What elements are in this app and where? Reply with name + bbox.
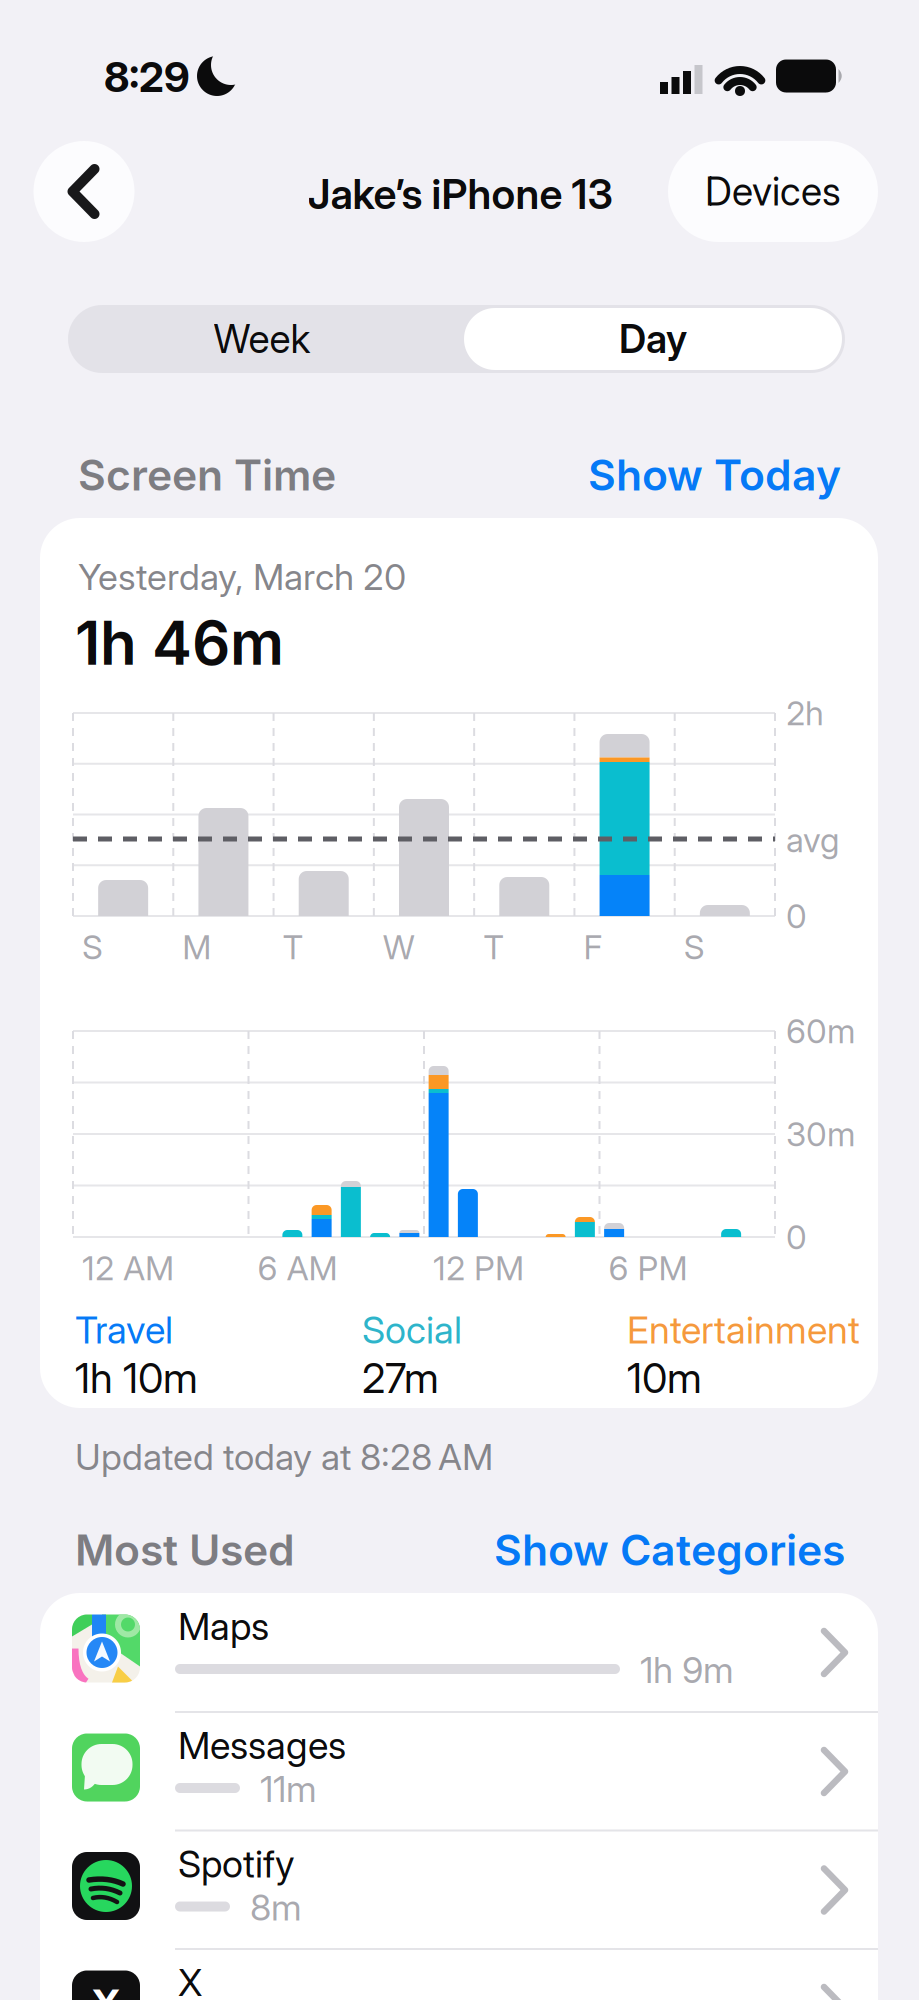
- button[interactable]: Show Categories: [475, 1522, 845, 1578]
- button[interactable]: Week: [72, 305, 452, 373]
- staticText: X: [178, 1960, 202, 2000]
- staticText: M: [182, 927, 211, 967]
- staticText: Messages: [178, 1723, 346, 1767]
- staticText: Most Used: [75, 1525, 295, 1575]
- staticText: Travel: [75, 1308, 173, 1352]
- button[interactable]: Back: [33, 141, 134, 242]
- staticText: 27m: [362, 1354, 439, 1402]
- staticText: Maps: [178, 1604, 269, 1648]
- staticText: S: [684, 927, 705, 967]
- button[interactable]: Show Today: [571, 447, 841, 503]
- staticText: S: [82, 927, 103, 967]
- staticText: Show Categories: [494, 1525, 845, 1575]
- staticText: Screen Time: [78, 450, 336, 500]
- staticText: 1h 9m: [640, 1649, 734, 1691]
- button[interactable]: Spotify: [40, 1830, 878, 1949]
- staticText: Jake’s iPhone 13: [307, 170, 612, 218]
- button[interactable]: Messages: [40, 1712, 878, 1831]
- staticText: avg: [786, 820, 839, 860]
- staticText: W: [383, 927, 415, 967]
- staticText: Show Today: [588, 450, 841, 500]
- button[interactable]: X: [40, 1949, 878, 2000]
- staticText: Week: [213, 316, 310, 362]
- staticText: 2h: [786, 693, 824, 733]
- staticText: 0: [786, 1217, 807, 1257]
- staticText: 11m: [260, 1768, 317, 1810]
- staticText: Day: [619, 316, 687, 362]
- staticText: X: [91, 1980, 120, 2000]
- staticText: 8:29: [104, 53, 190, 101]
- staticText: F: [583, 927, 602, 967]
- staticText: 1h 46m: [75, 608, 284, 678]
- staticText: 10m: [627, 1354, 702, 1402]
- staticText: 60m: [786, 1011, 855, 1051]
- staticText: 12 PM: [433, 1248, 524, 1288]
- staticText: 6 PM: [608, 1248, 687, 1288]
- button[interactable]: Maps: [40, 1593, 878, 1712]
- staticText: 30m: [786, 1114, 855, 1154]
- staticText: 12 AM: [82, 1248, 174, 1288]
- button[interactable]: Devices: [668, 141, 878, 242]
- button[interactable]: Day: [463, 305, 843, 373]
- staticText: Entertainment: [627, 1308, 860, 1352]
- staticText: Updated today at 8:28 AM: [75, 1436, 493, 1478]
- staticText: 0: [786, 896, 807, 936]
- staticText: 6 AM: [257, 1248, 337, 1288]
- staticText: T: [283, 927, 304, 967]
- staticText: Yesterday, March 20: [78, 556, 406, 598]
- staticText: Spotify: [178, 1842, 295, 1886]
- staticText: Devices: [705, 169, 841, 214]
- staticText: Social: [362, 1308, 462, 1352]
- staticText: 1h 10m: [75, 1354, 198, 1402]
- staticText: 8m: [250, 1886, 302, 1929]
- staticText: T: [483, 927, 504, 967]
